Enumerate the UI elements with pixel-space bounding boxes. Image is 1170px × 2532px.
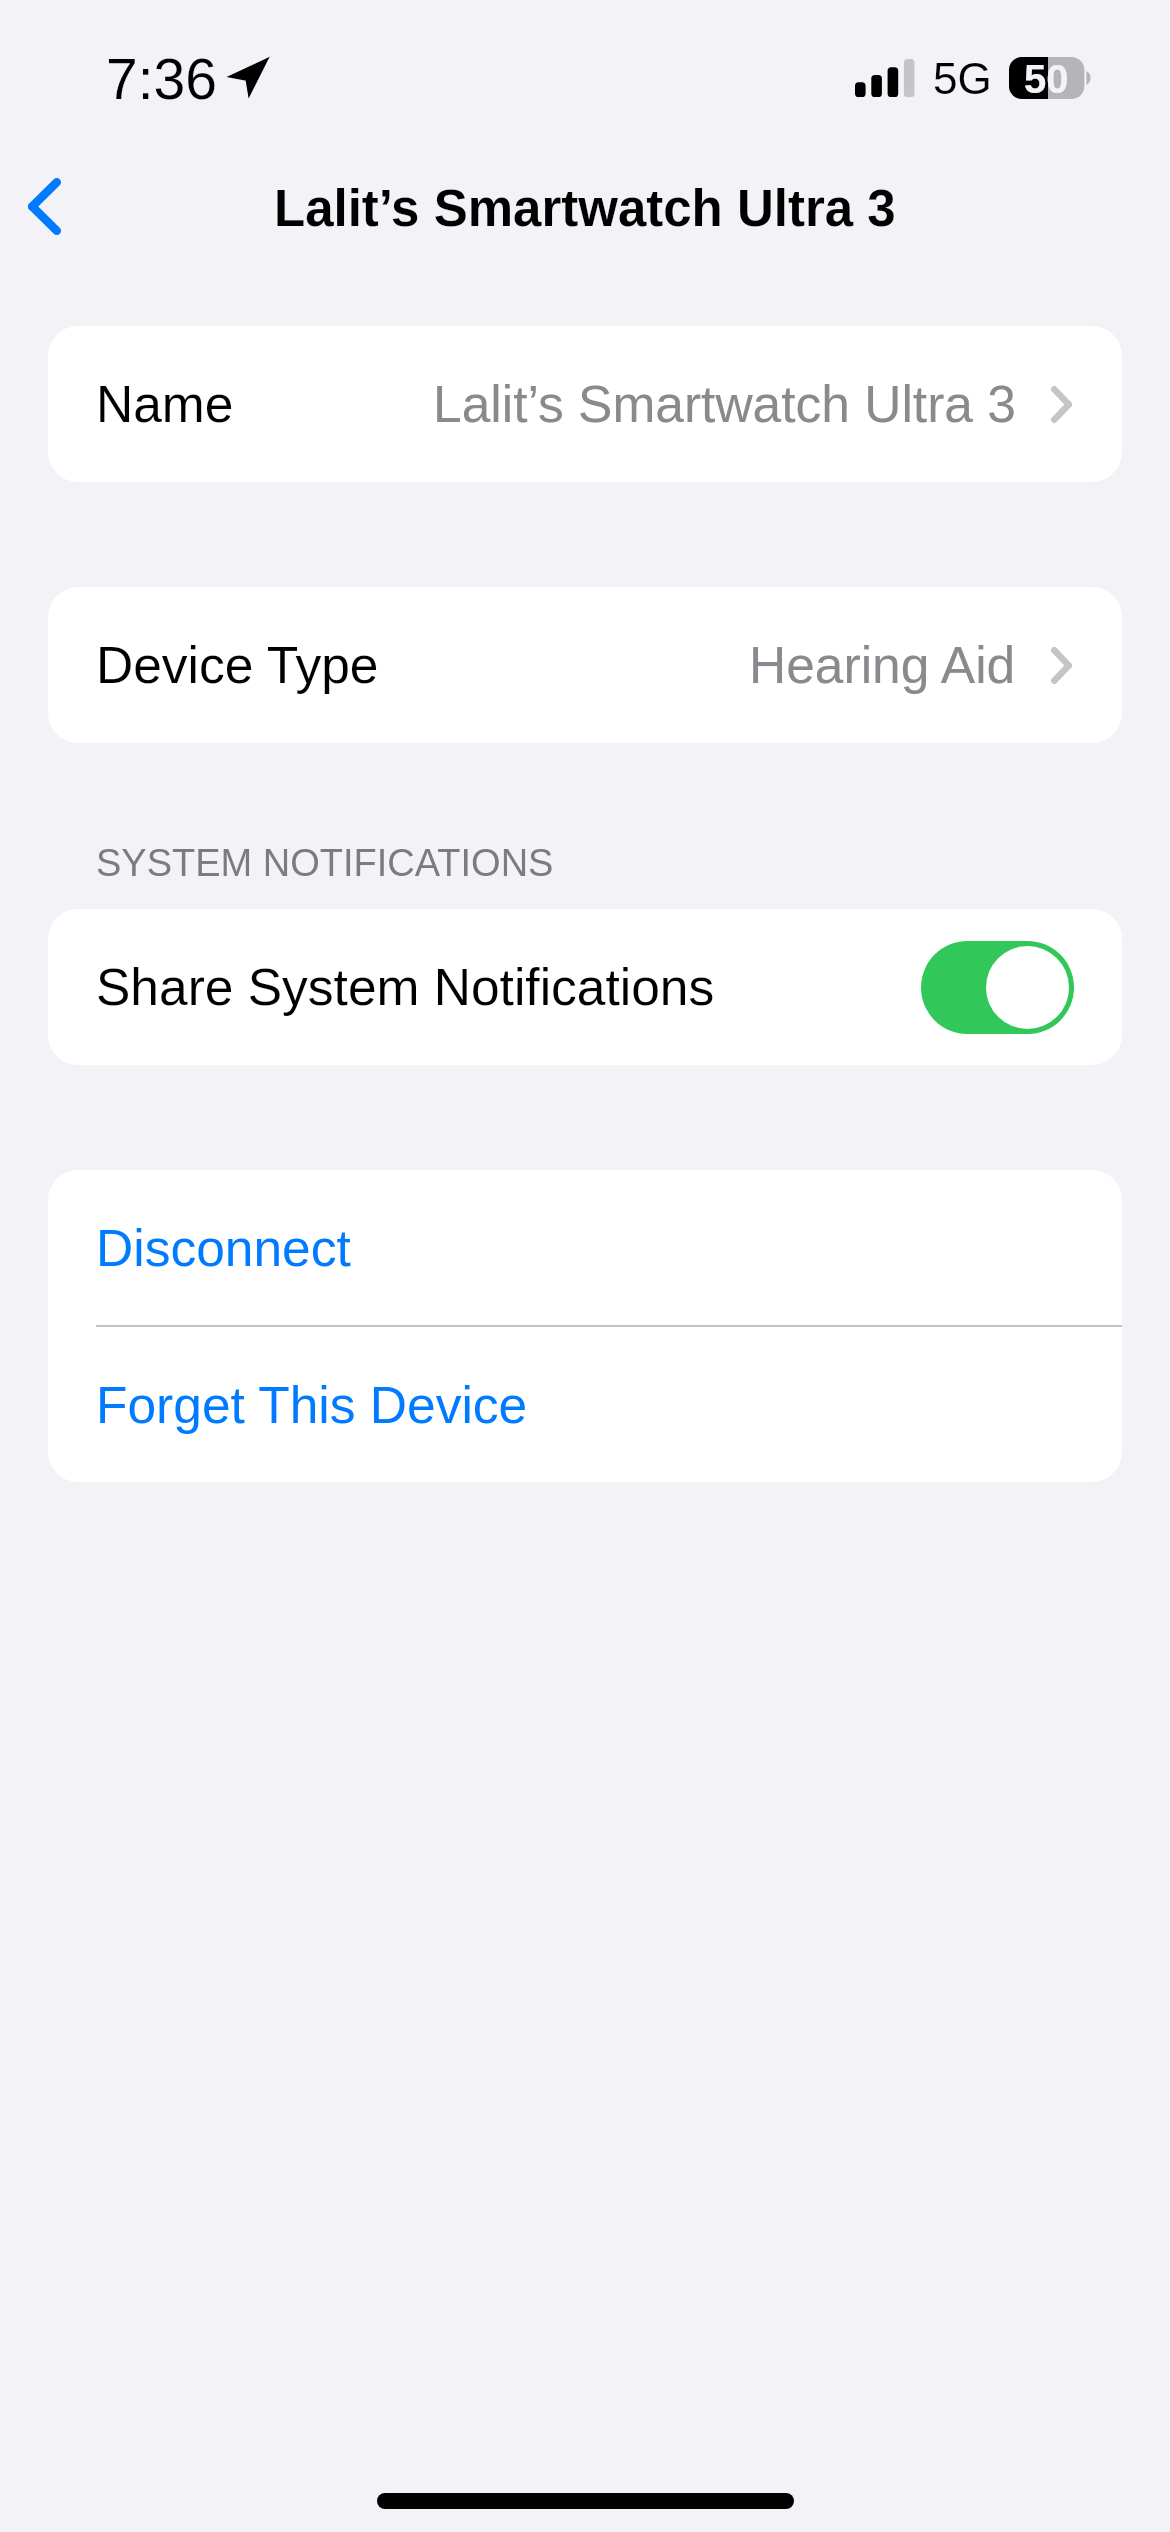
staticText: 7:36: [106, 47, 217, 111]
staticText: SYSTEM NOTIFICATIONS: [96, 842, 554, 884]
staticText: Name: [96, 375, 234, 433]
button[interactable]: Share System Notifications: [48, 909, 1122, 1065]
button[interactable]: Disconnect: [48, 1170, 1122, 1325]
staticText: Disconnect: [96, 1219, 351, 1277]
staticText: Share System Notifications: [96, 958, 715, 1016]
staticText: Lalit’s Smartwatch Ultra 3: [274, 180, 896, 237]
button[interactable]: Forget This Device: [48, 1327, 1122, 1482]
button[interactable]: Device Type: [48, 587, 1122, 743]
staticText: 50: [1024, 57, 1069, 99]
staticText: 5G: [933, 54, 992, 103]
staticText: Device Type: [96, 636, 379, 694]
staticText: Lalit’s Smartwatch Ultra 3: [433, 375, 1016, 433]
button[interactable]: Name: [48, 326, 1122, 482]
button[interactable]: Share System Notifications, on: [921, 941, 1074, 1034]
button[interactable]: Back: [18, 168, 70, 244]
staticText: Hearing Aid: [749, 636, 1016, 694]
staticText: Forget This Device: [96, 1376, 528, 1434]
